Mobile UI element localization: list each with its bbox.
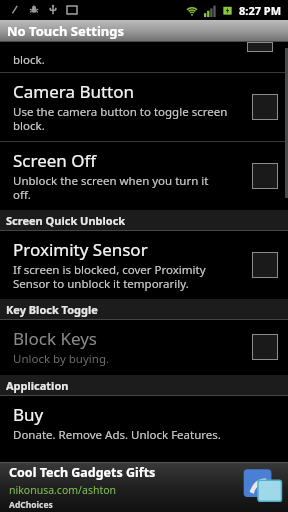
staticText: Block Keys [13, 327, 97, 350]
staticText: Proximity Sensor [13, 238, 148, 261]
staticText: Use the camera button to toggle screen b… [13, 104, 228, 133]
button[interactable]: Cool Tech Gadgets Gifts [0, 462, 288, 512]
button[interactable]: Screen Off [0, 142, 288, 210]
other: Advertisement image [242, 466, 284, 508]
staticText: Unblock the screen when you turn it off. [13, 173, 209, 202]
button[interactable]: Block Keys checkbox [252, 334, 278, 360]
staticText: Camera Button [13, 80, 135, 103]
staticText: nikonusa.com/ashton [9, 483, 117, 497]
staticText: Screen Quick Unblock [6, 213, 126, 228]
staticText: Cool Tech Gadgets Gifts [9, 464, 156, 481]
staticText: 8:27 PM [239, 3, 282, 18]
staticText: Buy [13, 403, 44, 426]
button[interactable]: Camera Button [0, 73, 288, 141]
button[interactable]: Buy [0, 396, 288, 451]
staticText: No Touch Settings [7, 22, 125, 40]
button[interactable]: Screen Off checkbox [252, 163, 278, 189]
staticText: Application [6, 378, 69, 393]
staticText: If screen is blocked, cover Proximity Se… [13, 262, 206, 291]
staticText: Unlock by buying. [13, 351, 110, 367]
staticText: AdChoices [9, 499, 53, 511]
button[interactable]: Block Keys [0, 320, 288, 375]
button[interactable]: Proximity Sensor checkbox [252, 252, 278, 278]
button[interactable]: Camera Button checkbox [252, 94, 278, 120]
staticText: Donate. Remove Ads. Unlock Features. [13, 427, 221, 443]
button[interactable]: Proximity Sensor [0, 231, 288, 299]
staticText: block. [13, 52, 45, 68]
staticText: Key Block Toggle [6, 302, 98, 317]
staticText: Screen Off [13, 149, 97, 172]
